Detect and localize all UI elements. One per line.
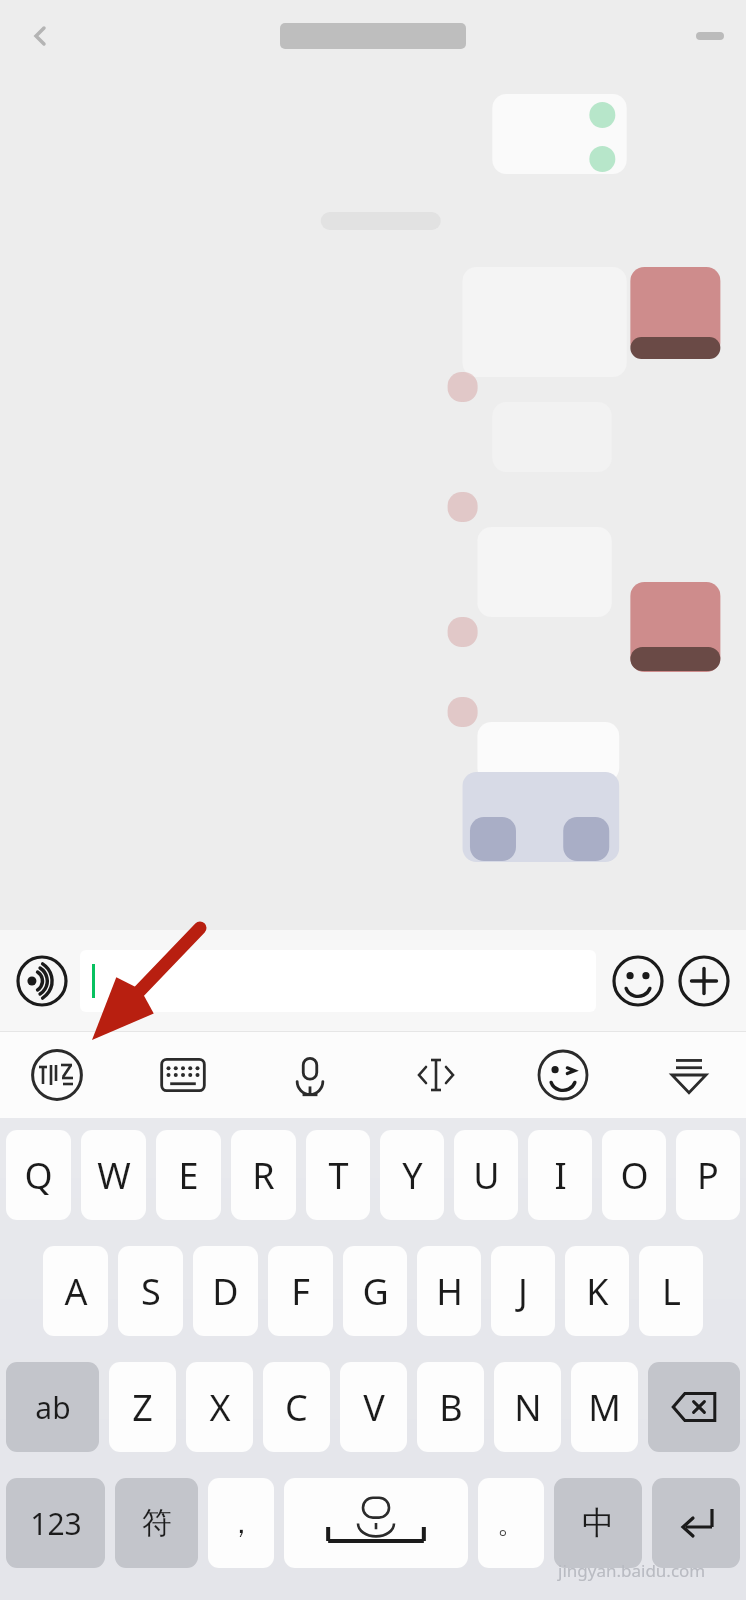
button[interactable]	[80, 950, 596, 1012]
staticText: V	[363, 1383, 385, 1432]
button[interactable]: K	[565, 1246, 629, 1336]
staticText: A	[64, 1267, 88, 1316]
button[interactable]: C	[263, 1362, 330, 1452]
staticText: T	[328, 1151, 349, 1200]
button[interactable]: ，	[208, 1478, 274, 1568]
button[interactable]: Hide keyboard	[656, 1042, 722, 1108]
button[interactable]: Back	[20, 16, 60, 56]
staticText: M	[588, 1383, 621, 1432]
staticText: P	[697, 1151, 719, 1200]
staticText: ，	[227, 1506, 255, 1541]
button[interactable]: Move cursor	[403, 1042, 469, 1108]
staticText: Q	[24, 1151, 53, 1200]
button[interactable]: Z	[109, 1362, 176, 1452]
staticText: 中	[582, 1503, 614, 1543]
button[interactable]: O	[602, 1130, 666, 1220]
button[interactable]: X	[186, 1362, 253, 1452]
staticText: D	[212, 1267, 239, 1316]
button[interactable]: S	[118, 1246, 183, 1336]
staticText: jingyan.baidu.com	[558, 1559, 706, 1582]
button[interactable]: P	[676, 1130, 740, 1220]
button[interactable]: Voice input	[14, 953, 70, 1009]
button[interactable]: I	[528, 1130, 592, 1220]
button[interactable]: R	[231, 1130, 296, 1220]
button[interactable]: Y	[380, 1130, 444, 1220]
button[interactable]: Emoticons	[530, 1042, 596, 1108]
staticText: R	[252, 1151, 275, 1200]
button[interactable]: V	[340, 1362, 407, 1452]
button[interactable]: 中	[554, 1478, 642, 1568]
button[interactable]: F	[268, 1246, 333, 1336]
staticText: 。	[497, 1506, 525, 1541]
button[interactable]: Input method logo	[24, 1042, 90, 1108]
button[interactable]: E	[156, 1130, 221, 1220]
button[interactable]: More	[696, 32, 724, 40]
button[interactable]: M	[571, 1362, 638, 1452]
staticText: ab	[35, 1387, 71, 1428]
staticText: B	[439, 1383, 463, 1432]
staticText: S	[141, 1267, 161, 1316]
button[interactable]: Backspace	[648, 1362, 740, 1452]
staticText: O	[620, 1151, 649, 1200]
button[interactable]: Enter	[652, 1478, 740, 1568]
staticText: U	[473, 1151, 500, 1200]
button[interactable]: Emoji	[610, 953, 666, 1009]
button[interactable]: 123	[6, 1478, 105, 1568]
button[interactable]: T	[306, 1130, 370, 1220]
staticText: G	[362, 1267, 389, 1316]
button[interactable]: J	[491, 1246, 555, 1336]
staticText: I	[554, 1151, 567, 1200]
staticText: L	[662, 1267, 681, 1316]
button[interactable]: More functions	[676, 953, 732, 1009]
button[interactable]: Space	[284, 1478, 468, 1568]
button[interactable]: W	[81, 1130, 146, 1220]
staticText: 符	[142, 1504, 172, 1542]
button[interactable]: Voice typing	[277, 1042, 343, 1108]
button[interactable]: Q	[6, 1130, 71, 1220]
button[interactable]: 。	[478, 1478, 544, 1568]
button[interactable]: N	[494, 1362, 561, 1452]
button[interactable]: ab	[6, 1362, 99, 1452]
staticText: F	[291, 1267, 310, 1316]
staticText: J	[518, 1267, 528, 1316]
button[interactable]: Keyboard layout	[150, 1042, 216, 1108]
staticText: E	[178, 1151, 199, 1200]
staticText: Z	[132, 1383, 153, 1432]
button[interactable]: B	[417, 1362, 484, 1452]
button[interactable]: 符	[115, 1478, 198, 1568]
staticText: N	[514, 1383, 542, 1432]
button[interactable]: D	[193, 1246, 258, 1336]
button[interactable]: G	[343, 1246, 407, 1336]
staticText: Y	[402, 1151, 423, 1200]
button[interactable]: U	[454, 1130, 518, 1220]
button[interactable]: H	[417, 1246, 481, 1336]
button[interactable]: A	[43, 1246, 108, 1336]
staticText: W	[97, 1151, 131, 1200]
staticText: C	[285, 1383, 308, 1432]
staticText: 123	[30, 1503, 82, 1544]
staticText: H	[436, 1267, 463, 1316]
staticText: X	[209, 1383, 231, 1432]
staticText: K	[586, 1267, 609, 1316]
button[interactable]: L	[639, 1246, 703, 1336]
